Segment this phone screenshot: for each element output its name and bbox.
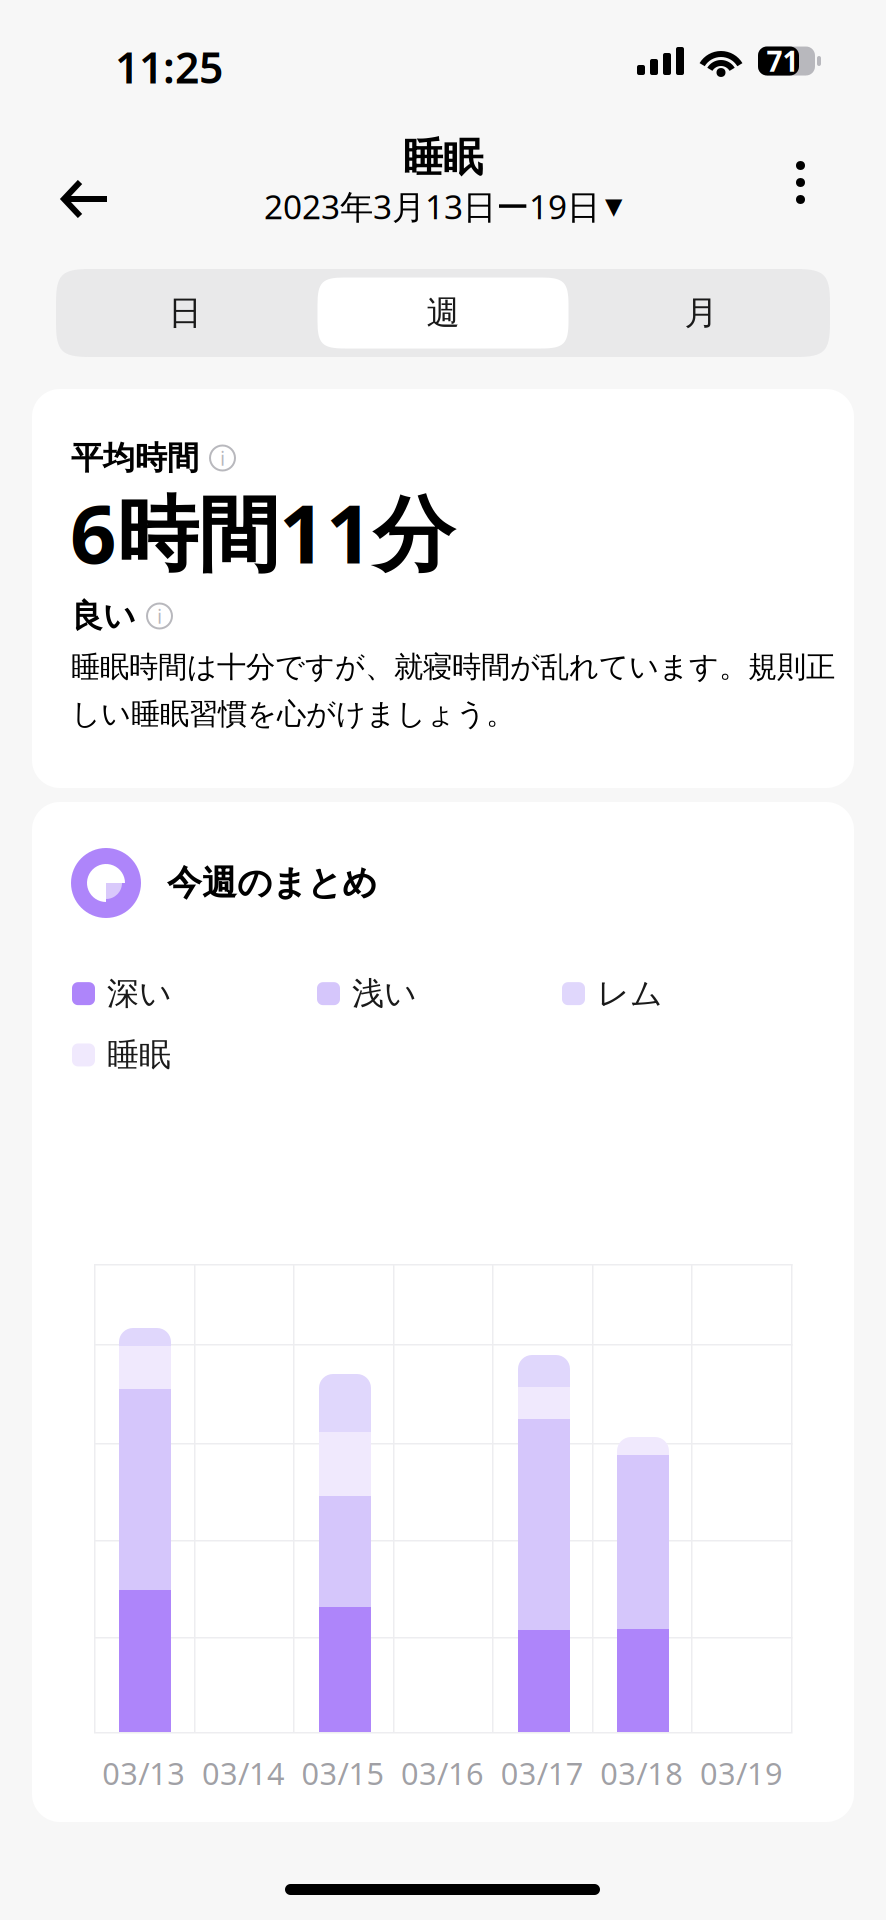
staticText: i [157,603,162,629]
button[interactable]: 週 [314,269,572,357]
staticText: 今週のまとめ [167,862,377,904]
button[interactable]: Back [42,159,128,239]
staticText: 11:25 [115,39,223,95]
staticText: i [220,445,225,471]
staticText: 03/17 [501,1753,584,1793]
staticText: 2023年3月13日ー19日 [264,184,600,228]
staticText: 03/18 [600,1753,683,1793]
staticText: ▼ [605,193,622,219]
staticText: 03/14 [202,1753,285,1793]
button[interactable]: 日 [56,269,314,357]
staticText: 71 [766,42,798,80]
staticText: 深い [107,974,172,1013]
staticText: 03/19 [700,1753,783,1793]
button[interactable]: 2023年3月13日ー19日 [264,184,622,228]
staticText: 睡眠時間は十分ですが、就寝時間が乱れています。規則正 [71,649,835,685]
staticText: 平均時間 [71,438,199,478]
staticText: 週 [426,292,459,333]
staticText: 睡眠 [107,1035,171,1075]
staticText: 03/13 [102,1753,185,1793]
staticText: 月 [684,292,717,333]
staticText: しい睡眠習慣を心がけましょう。 [71,696,515,732]
staticText: 睡眠 [403,133,483,182]
staticText: 6時間11分 [70,478,454,586]
staticText: 浅い [352,974,417,1013]
staticText: 03/15 [301,1753,384,1793]
button[interactable]: More options [776,141,825,224]
button[interactable]: 月 [572,269,830,357]
staticText: 日 [168,292,201,333]
staticText: 03/16 [401,1753,484,1793]
staticText: レム [597,974,663,1013]
staticText: 良い [71,596,136,636]
